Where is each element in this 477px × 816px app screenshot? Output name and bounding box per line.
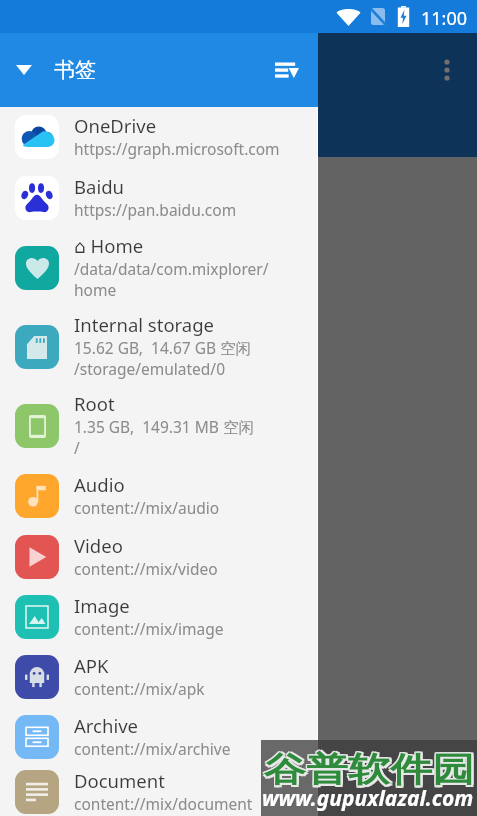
staticText: 15.62 GB, 14.67 GB 空闲 [74, 337, 252, 358]
staticText: 11:00 [421, 6, 468, 31]
button[interactable]: Document [0, 767, 318, 816]
button[interactable]: ⌂ Home [0, 228, 318, 307]
button[interactable]: Video [0, 526, 318, 587]
staticText: 1.35 GB, 149.31 MB 空闲 [74, 416, 254, 437]
staticText: Internal storage [74, 312, 215, 337]
staticText: /storage/emulated/0 [74, 358, 226, 379]
staticText: https://pan.baidu.com [74, 199, 237, 220]
staticText: 谷普软件园 [263, 748, 473, 790]
staticText: www.gupuxlazal.com [262, 784, 474, 813]
staticText: 谷普软件园 [263, 749, 473, 791]
staticText: 书签 [54, 57, 96, 83]
staticText: Archive [74, 713, 139, 738]
button[interactable]: Archive [0, 707, 318, 767]
button[interactable]: Root [0, 386, 318, 465]
staticText: ⌂ Home [74, 233, 144, 258]
staticText: Baidu [74, 174, 124, 199]
staticText: Video [74, 533, 123, 558]
staticText: /data/data/com.mixplorer/ [74, 258, 269, 279]
button[interactable]: APK [0, 647, 318, 707]
button[interactable]: Expand [0, 46, 48, 94]
staticText: 谷普软件园 [266, 749, 476, 791]
staticText: 谷普软件园 [264, 751, 474, 793]
staticText: https://graph.microsoft.com [74, 138, 280, 159]
staticText: 谷普软件园 [266, 748, 476, 790]
button[interactable]: Baidu [0, 167, 318, 228]
staticText: 谷普软件园 [264, 748, 474, 790]
staticText: Image [74, 593, 130, 618]
button[interactable]: Audio [0, 465, 318, 526]
button[interactable]: Sort [263, 46, 311, 94]
staticText: Root [74, 391, 115, 416]
staticText: content://mix/audio [74, 497, 220, 518]
staticText: content://mix/document [74, 793, 253, 814]
staticText: / [74, 437, 80, 458]
staticText: home [74, 279, 117, 300]
button[interactable]: OneDrive [0, 107, 318, 167]
staticText: OneDrive [74, 113, 157, 138]
staticText: 谷普软件园 [266, 751, 476, 793]
staticText: Audio [74, 472, 125, 497]
staticText: 谷普软件园 [263, 751, 473, 793]
staticText: content://mix/video [74, 558, 218, 579]
staticText: content://mix/apk [74, 678, 205, 699]
staticText: APK [74, 653, 109, 678]
staticText: content://mix/image [74, 618, 224, 639]
staticText: Document [74, 768, 165, 793]
button[interactable]: Internal storage [0, 307, 318, 386]
button[interactable]: Image [0, 587, 318, 647]
staticText: 谷普软件园 [264, 749, 474, 791]
button[interactable]: More options [423, 46, 471, 94]
staticText: content://mix/archive [74, 738, 231, 759]
